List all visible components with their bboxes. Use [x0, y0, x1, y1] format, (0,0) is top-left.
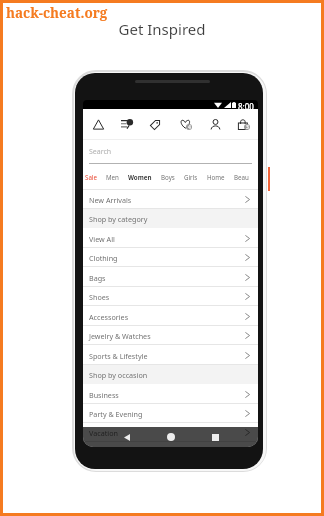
- staticText: Get Inspired: [0, 19, 324, 39]
- staticText: Business: [89, 390, 119, 400]
- staticText: Clothing: [89, 253, 118, 263]
- staticText: Sale: [85, 173, 97, 181]
- staticText: Vacation: [89, 428, 118, 438]
- button[interactable]: Men: [106, 164, 119, 190]
- button[interactable]: Home logo: [89, 111, 107, 137]
- staticText: Party & Evening: [89, 409, 143, 419]
- button[interactable]: Business: [83, 385, 258, 404]
- button[interactable]: Women: [128, 164, 152, 190]
- staticText: Jewelry & Watches: [89, 331, 151, 341]
- button[interactable]: Accessories: [83, 307, 258, 326]
- staticText: Accessories: [89, 312, 129, 322]
- button[interactable]: Home: [161, 427, 181, 447]
- staticText: Men: [106, 173, 119, 181]
- staticText: 4: [188, 124, 191, 130]
- button[interactable]: Bags: [83, 268, 258, 287]
- button[interactable]: Back: [117, 427, 137, 447]
- staticText: Search: [89, 147, 112, 157]
- staticText: 3: [246, 124, 249, 130]
- staticText: hack-cheat.org: [6, 4, 108, 22]
- staticText: Home: [207, 173, 225, 181]
- button[interactable]: Offers: [147, 111, 165, 137]
- staticText: Girls: [184, 173, 198, 181]
- staticText: Sports & Lifestyle: [89, 351, 148, 361]
- button[interactable]: Boys: [161, 164, 175, 190]
- staticText: New Arrivals: [89, 195, 132, 205]
- button[interactable]: Sports & Lifestyle: [83, 346, 258, 365]
- button[interactable]: Shoes: [83, 287, 258, 306]
- button[interactable]: New Arrivals: [83, 190, 258, 209]
- staticText: 8:00: [238, 101, 254, 109]
- staticText: Shoes: [89, 292, 110, 302]
- staticText: Women: [128, 173, 152, 181]
- staticText: Beau: [234, 173, 249, 181]
- staticText: Boys: [161, 173, 175, 181]
- button[interactable]: Recent apps: [205, 427, 225, 447]
- button[interactable]: Wishlist: [177, 111, 195, 137]
- button[interactable]: Sale: [85, 164, 97, 190]
- staticText: View All: [89, 234, 115, 244]
- staticText: Shop by category: [89, 214, 148, 224]
- button[interactable]: Jewelry & Watches: [83, 326, 258, 345]
- button[interactable]: Home: [207, 164, 225, 190]
- button[interactable]: View All: [83, 229, 258, 248]
- button[interactable]: Vacation: [83, 423, 258, 442]
- button[interactable]: Girls: [184, 164, 198, 190]
- button[interactable]: Search categories: [118, 111, 136, 137]
- button[interactable]: Beau: [234, 164, 249, 190]
- staticText: Shop by occasion: [89, 370, 148, 380]
- button[interactable]: Clothing: [83, 248, 258, 267]
- button[interactable]: Party & Evening: [83, 404, 258, 423]
- button[interactable]: Account: [206, 111, 224, 137]
- button[interactable]: Shopping bag: [235, 111, 253, 137]
- staticText: Bags: [89, 273, 106, 283]
